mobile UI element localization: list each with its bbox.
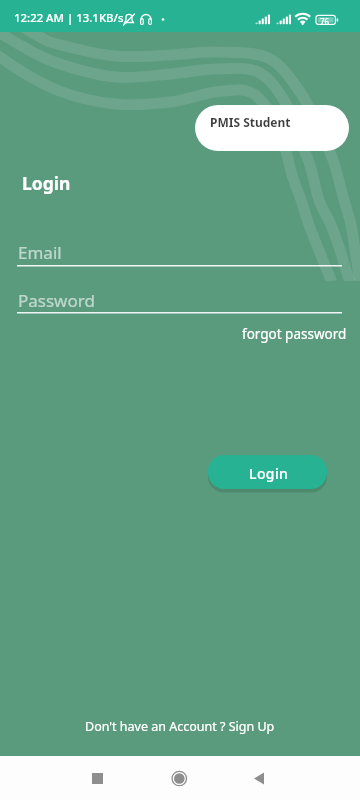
- staticText: PMIS Student: [210, 114, 291, 130]
- button[interactable]: Login: [208, 455, 327, 489]
- button[interactable]: [17, 312, 342, 314]
- staticText: 76: [320, 16, 330, 27]
- staticText: Login: [249, 464, 289, 483]
- staticText: Login: [22, 171, 71, 195]
- staticText: 12:22 AM | 13.1KB/s: [14, 10, 124, 26]
- staticText: Password: [18, 289, 95, 312]
- other: System navigation: [0, 756, 360, 800]
- button[interactable]: Don't have an Account ? Sign Up: [85, 718, 275, 735]
- button[interactable]: [17, 265, 342, 267]
- button[interactable]: forgot password: [242, 325, 347, 343]
- staticText: Email: [18, 241, 62, 264]
- button[interactable]: PMIS Student: [195, 105, 349, 151]
